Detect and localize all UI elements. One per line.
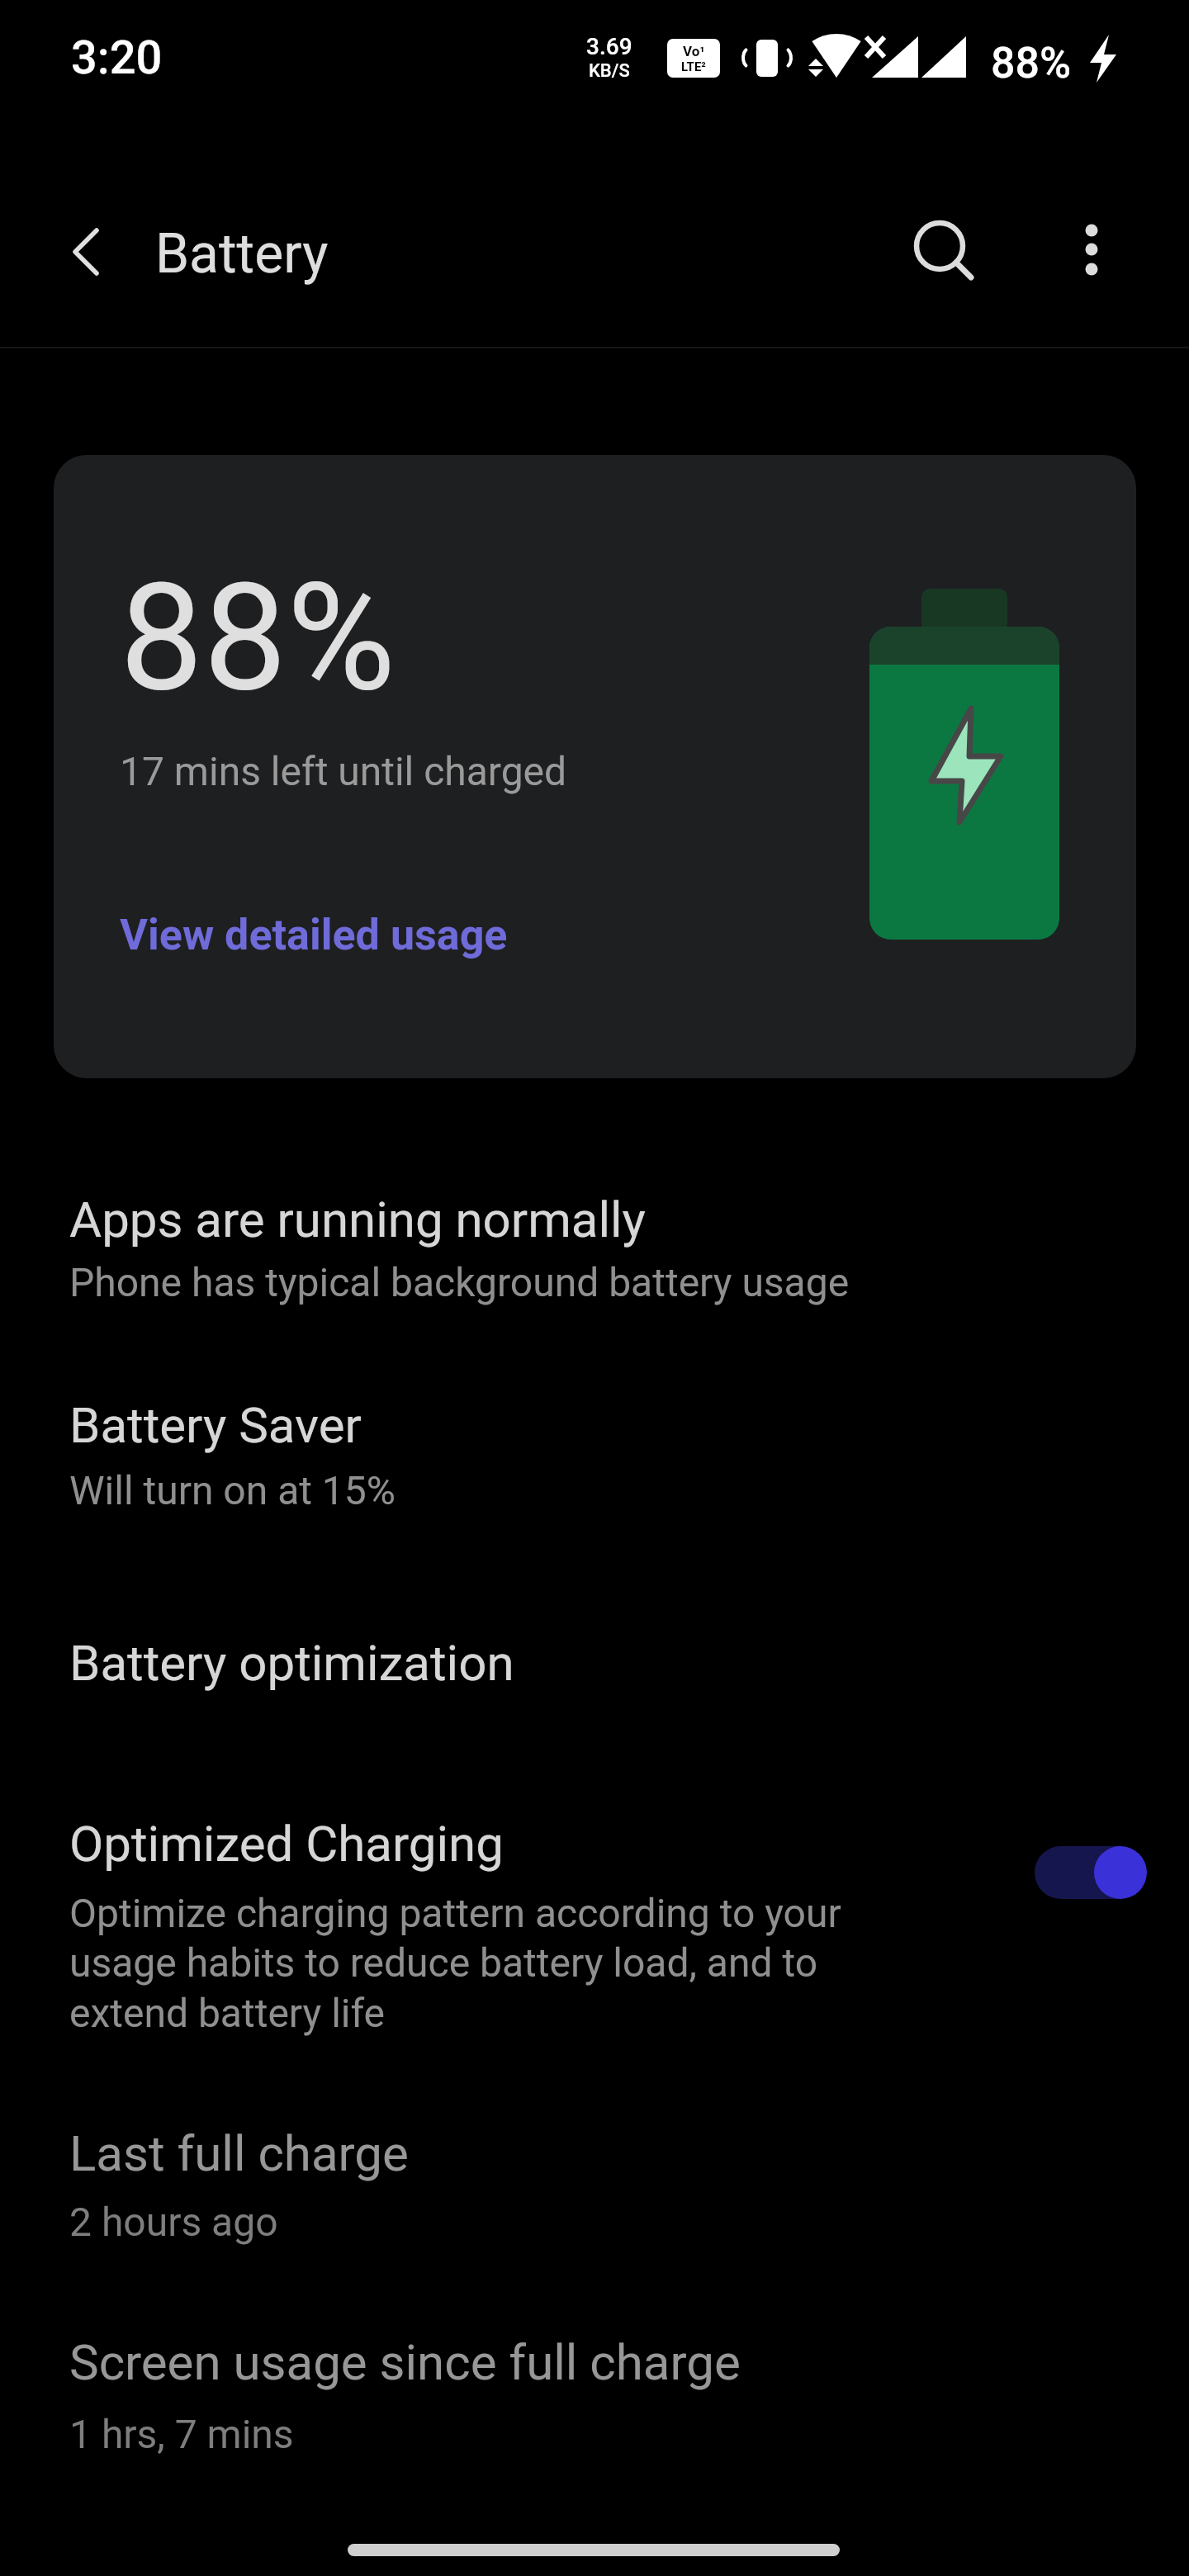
- staticText: 88%: [991, 38, 1072, 88]
- button[interactable]: Screen usage since full charge: [0, 2313, 1189, 2489]
- staticText: 2 hours ago: [69, 2199, 278, 2245]
- staticText: 3.69: [586, 33, 632, 60]
- button[interactable]: Optimized Charging: [0, 1792, 1189, 2056]
- staticText: KB/S: [589, 60, 630, 82]
- staticText: 17 mins left until charged: [120, 748, 567, 794]
- button[interactable]: [54, 223, 120, 289]
- staticText: Battery Saver: [69, 1396, 362, 1454]
- staticText: Will turn on at 15%: [69, 1467, 396, 1513]
- button[interactable]: [1042, 213, 1141, 312]
- button[interactable]: Battery Saver: [0, 1376, 1189, 1546]
- staticText: Optimized Charging: [69, 1815, 504, 1873]
- staticText: 88%: [120, 551, 396, 725]
- staticText: Optimize charging pattern according to y…: [69, 1890, 895, 2037]
- button[interactable]: Apps are running normally: [0, 1170, 1189, 1338]
- staticText: Phone has typical background battery usa…: [69, 1259, 850, 1305]
- staticText: Apps are running normally: [69, 1191, 646, 1248]
- staticText: 3:20: [71, 31, 163, 85]
- staticText: View detailed usage: [120, 910, 508, 960]
- button[interactable]: [885, 213, 992, 312]
- staticText: 1 hrs, 7 mins: [69, 2411, 294, 2457]
- button[interactable]: [1035, 1846, 1147, 1899]
- staticText: Last full charge: [69, 2124, 409, 2182]
- button[interactable]: Battery optimization: [0, 1613, 1189, 1729]
- button[interactable]: View detailed usage: [103, 884, 566, 975]
- staticText: Battery optimization: [69, 1634, 514, 1692]
- staticText: Screen usage since full charge: [69, 2333, 741, 2391]
- button[interactable]: Last full charge: [0, 2104, 1189, 2277]
- staticText: LTE²: [681, 59, 706, 74]
- staticText: Battery: [155, 222, 329, 286]
- staticText: Vo¹: [683, 43, 705, 59]
